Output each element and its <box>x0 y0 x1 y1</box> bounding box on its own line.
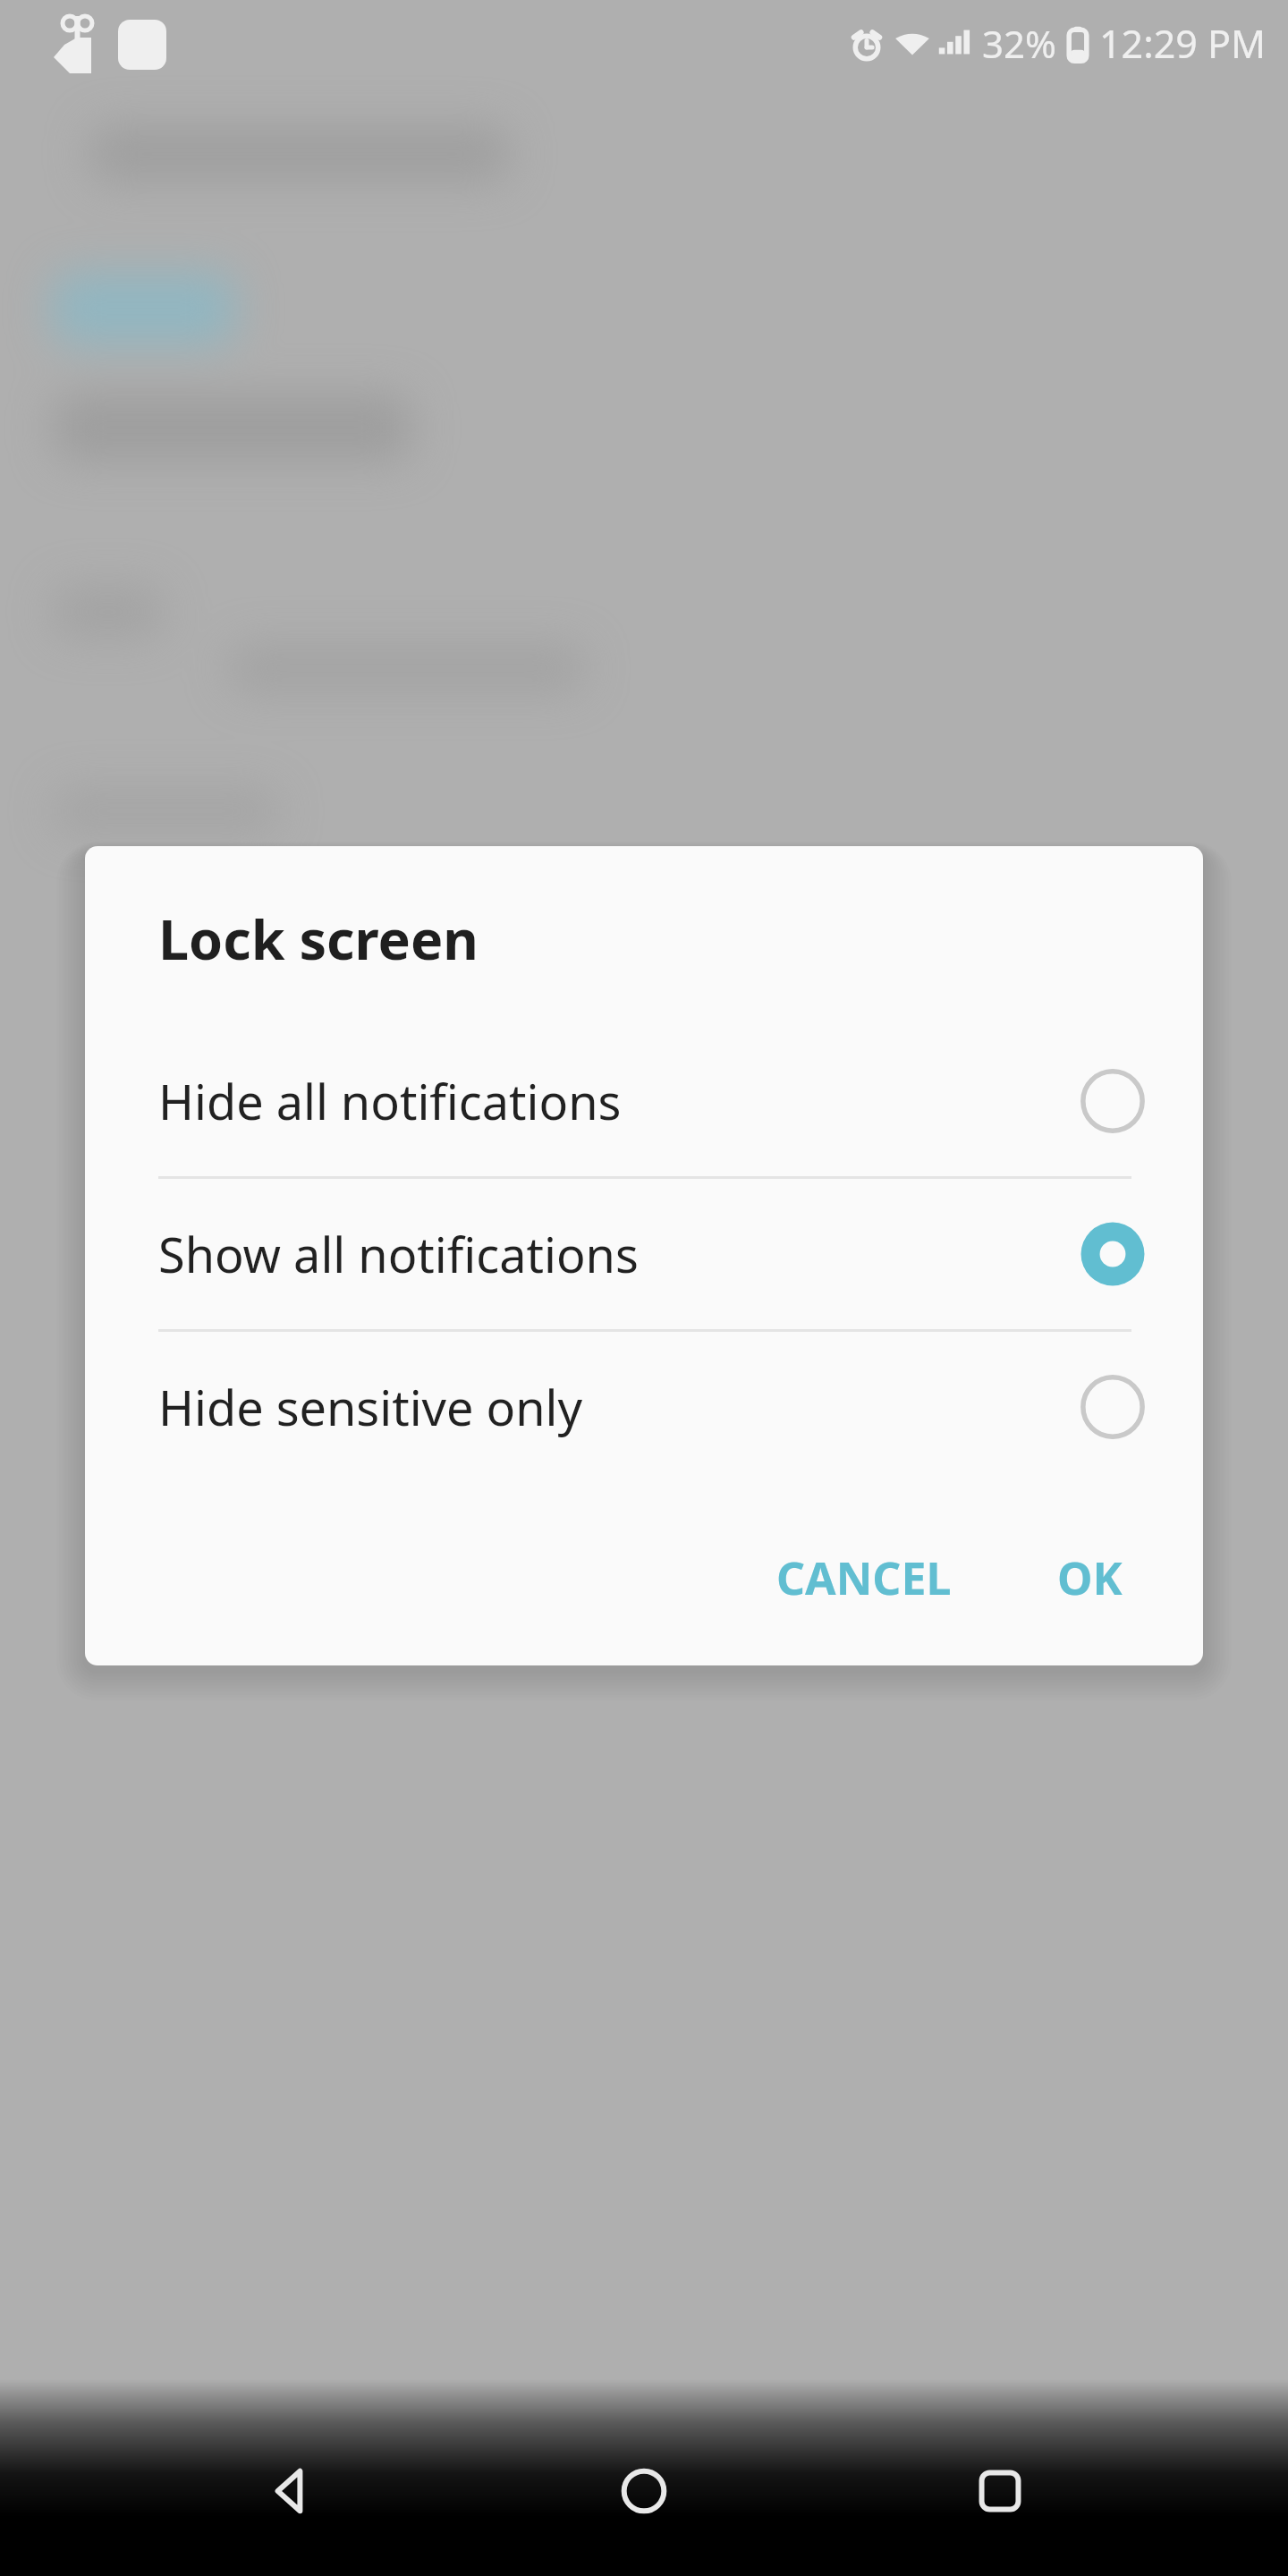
staticText: Hide all notifications <box>158 1068 1078 1134</box>
button[interactable]: Hide sensitive only <box>85 1332 1203 1482</box>
button[interactable]: Show all notifications <box>85 1179 1203 1329</box>
staticText: Lock screen <box>158 902 479 976</box>
staticText: 12:29 PM <box>1099 17 1267 70</box>
button[interactable]: Back <box>222 2424 356 2558</box>
button[interactable]: Home <box>577 2424 711 2558</box>
staticText: CANCEL <box>776 1547 952 1608</box>
staticText: 32% <box>982 18 1056 69</box>
button[interactable]: Recent apps <box>933 2424 1067 2558</box>
button[interactable]: OK <box>1045 1533 1135 1623</box>
button[interactable]: Hide all notifications <box>85 1026 1203 1176</box>
staticText: OK <box>1057 1547 1123 1608</box>
button[interactable]: CANCEL <box>764 1533 964 1623</box>
staticText: Show all notifications <box>158 1221 1078 1287</box>
staticText: Hide sensitive only <box>158 1374 1078 1440</box>
